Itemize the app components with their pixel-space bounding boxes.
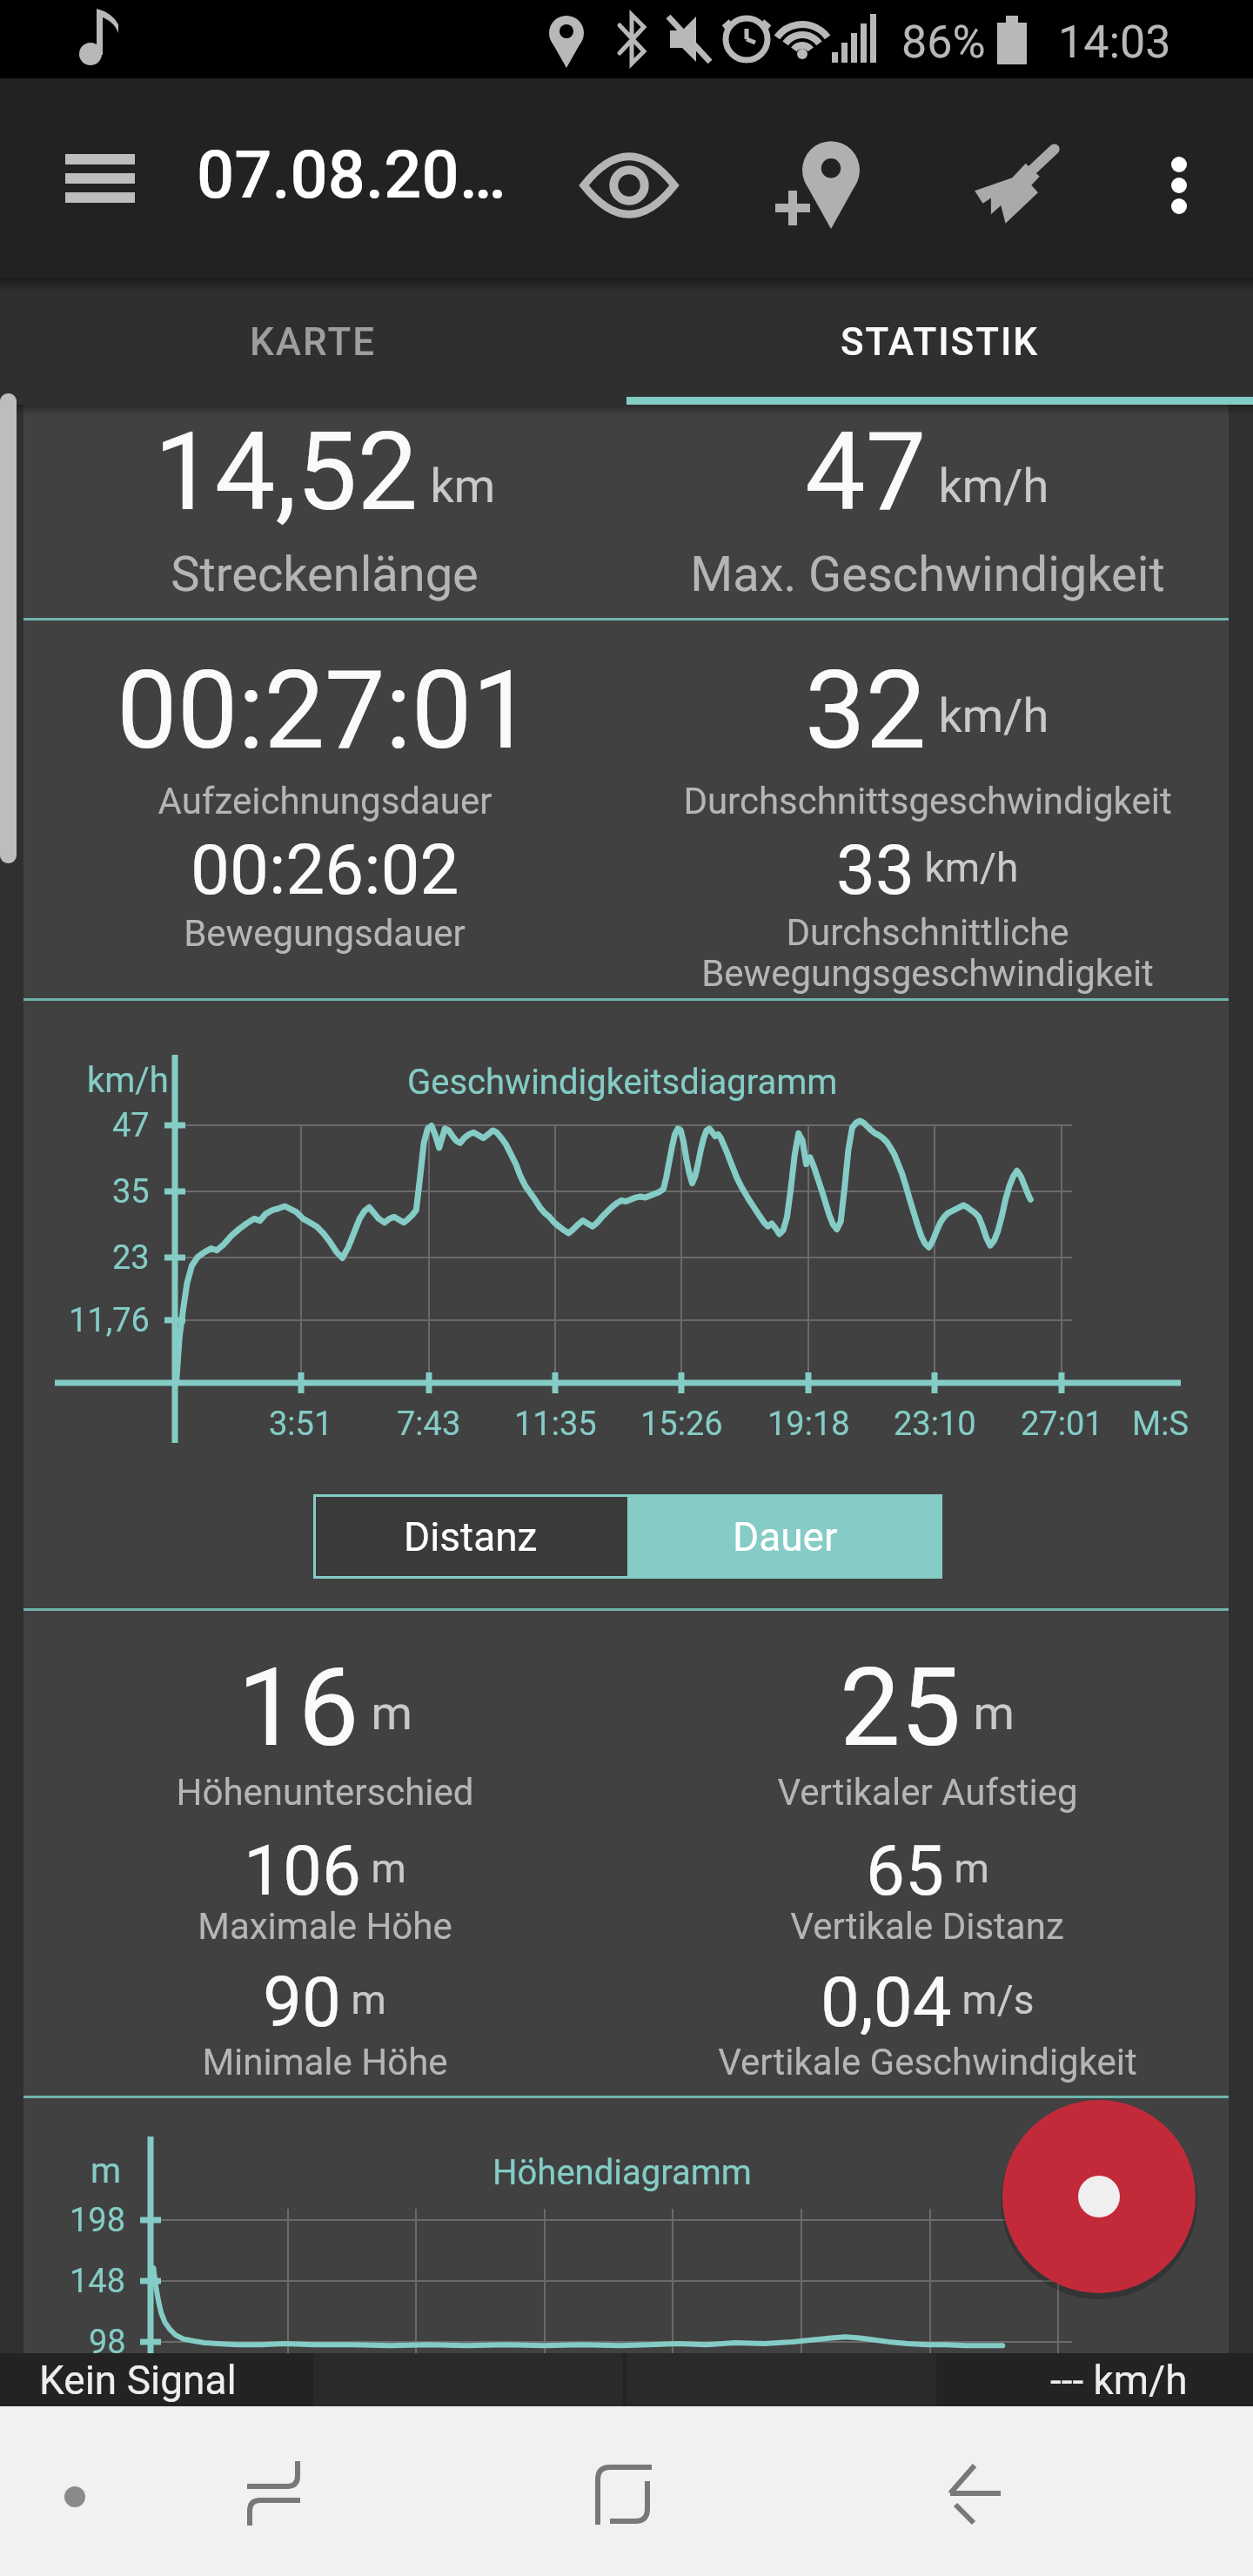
staticText: 86% <box>901 16 986 69</box>
staticText: M:S <box>1132 1405 1189 1444</box>
staticText: m <box>361 1845 406 1892</box>
button[interactable] <box>1127 126 1231 244</box>
staticText: 7:43 <box>397 1405 461 1444</box>
button[interactable] <box>557 2424 696 2563</box>
staticText: 07.08.20… <box>197 136 506 213</box>
staticText: 14,52 <box>154 409 419 531</box>
staticText: m <box>341 1976 386 2023</box>
staticText: 14:03 <box>1058 16 1171 69</box>
staticText: km/h <box>87 1060 169 1101</box>
button[interactable]: Dauer <box>627 1494 942 1579</box>
staticText: Aufzeichnungsdauer <box>157 780 492 822</box>
staticText: 98 <box>89 2323 126 2361</box>
button[interactable]: KARTE <box>0 278 626 405</box>
staticText: KARTE <box>250 319 377 365</box>
staticText: 27:01 <box>1021 1405 1103 1444</box>
staticText: Durchschnittliche Bewegungsgeschwindigke… <box>701 911 1154 995</box>
button[interactable] <box>570 126 687 244</box>
staticText: m <box>359 1686 412 1741</box>
staticText: m <box>90 2150 122 2189</box>
staticText: Vertikaler Aufstieg <box>777 1771 1078 1814</box>
staticText: Max. Geschwindigkeit <box>690 546 1165 603</box>
staticText: Maximale Höhe <box>198 1905 452 1948</box>
staticText: 25 <box>840 1645 962 1758</box>
staticText: km/h <box>927 688 1049 743</box>
staticText: 23 <box>112 1238 150 1277</box>
staticText: Durchschnittsgeschwindigkeit <box>683 780 1172 822</box>
button[interactable] <box>957 126 1075 244</box>
staticText: km <box>419 459 496 513</box>
staticText: STATISTIK <box>841 319 1040 365</box>
staticText: 47 <box>112 1106 150 1144</box>
staticText: 19:18 <box>767 1405 850 1444</box>
staticText: 47 <box>805 409 927 531</box>
staticText: 16 <box>238 1645 359 1758</box>
staticText: m/s <box>952 1976 1035 2023</box>
button[interactable] <box>761 126 879 244</box>
staticText: 0,04 <box>821 1962 952 2035</box>
staticText: km/h <box>927 459 1049 513</box>
staticText: 23:10 <box>894 1405 976 1444</box>
staticText: 32 <box>805 647 927 761</box>
button[interactable] <box>896 2424 1035 2563</box>
staticText: 00:26:02 <box>191 829 459 902</box>
button[interactable]: STATISTIK <box>626 278 1253 405</box>
staticText: Vertikale Distanz <box>790 1905 1064 1948</box>
staticText: 148 <box>70 2262 126 2300</box>
staticText: Höhenunterschied <box>176 1771 474 1814</box>
staticText: --- km/h <box>1050 2357 1188 2404</box>
staticText: 106 <box>244 1830 361 1903</box>
staticText: Höhendiagramm <box>492 2152 752 2193</box>
staticText: 65 <box>866 1830 944 1903</box>
button[interactable] <box>44 122 157 235</box>
staticText: 198 <box>70 2201 126 2239</box>
staticText: Geschwindigkeitsdiagramm <box>407 1062 838 1103</box>
staticText: Kein Signal <box>39 2357 237 2404</box>
staticText: 11:35 <box>514 1405 597 1444</box>
staticText: 3:51 <box>269 1405 333 1444</box>
staticText: Minimale Höhe <box>202 2041 448 2083</box>
staticText: Vertikale Geschwindigkeit <box>718 2041 1137 2083</box>
staticText: m <box>962 1686 1015 1741</box>
staticText: 15:26 <box>640 1405 723 1444</box>
staticText: 11,76 <box>69 1301 150 1339</box>
staticText: m <box>944 1845 989 1892</box>
staticText: 35 <box>112 1172 150 1211</box>
button[interactable]: Distanz <box>313 1494 627 1579</box>
staticText: 90 <box>263 1962 341 2035</box>
staticText: Dauer <box>733 1513 838 1560</box>
staticText: Distanz <box>404 1513 538 1560</box>
button[interactable] <box>204 2424 344 2563</box>
staticText: Bewegungsdauer <box>184 912 466 955</box>
staticText: 33 <box>836 829 915 902</box>
staticText: Streckenlänge <box>171 546 479 603</box>
button[interactable] <box>1002 2100 1196 2293</box>
staticText: 00:27:01 <box>117 647 533 761</box>
staticText: km/h <box>915 844 1019 891</box>
